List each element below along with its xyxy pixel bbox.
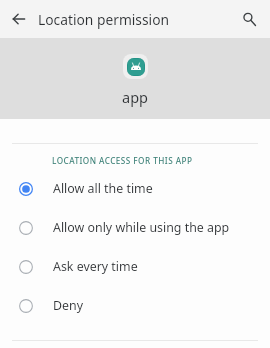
staticText: app — [122, 87, 148, 107]
button[interactable]: Allow all the time — [0, 169, 270, 208]
button[interactable]: Deny — [0, 286, 270, 325]
staticText: Location permission — [38, 10, 170, 29]
staticText: LOCATION ACCESS FOR THIS APP — [52, 155, 193, 166]
button[interactable]: Allow only while using the app — [0, 208, 270, 247]
button[interactable]: Back — [7, 7, 31, 31]
staticText: Ask every time — [53, 258, 138, 275]
staticText: Allow all the time — [53, 180, 153, 197]
button[interactable]: Ask every time — [0, 247, 270, 286]
staticText: Deny — [53, 297, 84, 314]
staticText: Allow only while using the app — [53, 219, 230, 236]
button[interactable]: Search — [237, 7, 261, 31]
